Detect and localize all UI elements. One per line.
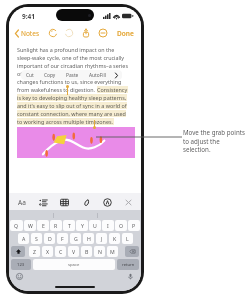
button[interactable]: Paste xyxy=(61,70,84,80)
staticText: D xyxy=(48,235,52,242)
staticText: from wakefulness to digestion. xyxy=(17,86,97,93)
staticText: sleep-wake cycle, one of the most crucia… xyxy=(17,54,125,61)
staticText: Paste xyxy=(66,72,79,78)
staticText: Copy xyxy=(44,72,56,78)
staticText: 123 xyxy=(17,262,25,268)
staticText: Q xyxy=(14,222,19,229)
staticText: G xyxy=(74,235,78,242)
button[interactable]: Cut xyxy=(21,70,39,80)
button[interactable]: O xyxy=(115,220,127,231)
staticText: Notes xyxy=(21,29,39,38)
button[interactable]: Done xyxy=(113,27,138,40)
staticText: I xyxy=(107,222,109,229)
button[interactable]: F xyxy=(57,233,68,244)
button[interactable]: Table xyxy=(56,195,72,209)
staticText: N xyxy=(98,248,102,255)
button[interactable]: R xyxy=(50,220,62,231)
button[interactable]: Attach xyxy=(78,195,94,209)
staticText: 9:41 xyxy=(22,12,35,21)
button[interactable]: Markup xyxy=(99,195,115,209)
button[interactable]: Z xyxy=(29,246,40,257)
staticText: is key to developing healthy sleep patte… xyxy=(17,94,127,101)
button[interactable]: 123 xyxy=(11,259,31,270)
staticText: space xyxy=(68,262,80,268)
button[interactable]: More actions xyxy=(111,71,122,80)
staticText: Done xyxy=(117,29,134,38)
button[interactable]: Dictate xyxy=(126,272,135,281)
staticText: and it's easy to slip out of sync in a w… xyxy=(17,102,127,109)
button[interactable]: E xyxy=(37,220,49,231)
button[interactable]: return xyxy=(117,259,139,270)
staticText: K xyxy=(113,235,117,242)
staticText: Move the grab points xyxy=(183,128,245,136)
button[interactable]: Share xyxy=(80,27,92,39)
button[interactable]: Shift xyxy=(11,246,25,257)
staticText: important of our circadian rhythms–a ser… xyxy=(17,62,128,69)
button[interactable]: space xyxy=(33,259,115,270)
button[interactable]: M xyxy=(107,246,118,257)
button[interactable]: B xyxy=(81,246,92,257)
button[interactable]: J xyxy=(96,233,107,244)
staticText: B xyxy=(85,248,89,255)
staticText: A xyxy=(22,235,26,242)
button[interactable]: Checklist xyxy=(35,195,51,209)
staticText: to adjust the selection. xyxy=(183,137,245,153)
button[interactable]: Close keyboard xyxy=(120,195,136,209)
staticText: return xyxy=(122,262,135,268)
staticText: X xyxy=(46,248,50,255)
button[interactable]: G xyxy=(70,233,81,244)
staticText: Consistency xyxy=(97,86,128,93)
button[interactable]: V xyxy=(68,246,79,257)
staticText: Cut xyxy=(26,72,34,78)
button[interactable]: L xyxy=(122,233,133,244)
button[interactable]: Notes xyxy=(9,27,43,40)
button[interactable]: P xyxy=(128,220,140,231)
button[interactable]: A xyxy=(18,233,29,244)
button[interactable]: K xyxy=(109,233,120,244)
staticText: constant connection, where many are used xyxy=(17,110,126,117)
button[interactable]: Undo xyxy=(47,27,59,39)
staticText: to working across multiple timezones. xyxy=(17,118,114,125)
button[interactable]: X xyxy=(42,246,53,257)
staticText: L xyxy=(126,235,129,242)
button[interactable]: Emoji xyxy=(15,272,24,281)
staticText: T xyxy=(68,222,71,229)
button[interactable]: C xyxy=(55,246,66,257)
staticText: O xyxy=(119,222,124,229)
staticText: Aa xyxy=(18,198,26,207)
button[interactable]: Q xyxy=(10,220,23,231)
staticText: of biological, physical, and behavioral xyxy=(17,70,112,77)
staticText: Z xyxy=(33,248,36,255)
button[interactable]: T xyxy=(63,220,75,231)
staticText: J xyxy=(101,235,103,242)
staticText: W xyxy=(28,222,33,229)
staticText: M xyxy=(110,248,115,255)
staticText: H xyxy=(87,235,91,242)
staticText: F xyxy=(61,235,64,242)
button[interactable]: Text format xyxy=(14,195,30,209)
button[interactable]: U xyxy=(89,220,101,231)
button[interactable]: H xyxy=(83,233,94,244)
button[interactable]: D xyxy=(44,233,55,244)
button[interactable]: N xyxy=(94,246,105,257)
button[interactable]: AutoFill xyxy=(84,70,111,80)
button[interactable]: More xyxy=(97,27,109,39)
staticText: Y xyxy=(81,222,84,229)
staticText: S xyxy=(35,235,38,242)
button[interactable]: W xyxy=(24,220,36,231)
button[interactable]: Delete xyxy=(125,246,139,257)
button[interactable]: S xyxy=(31,233,42,244)
button[interactable]: I xyxy=(102,220,114,231)
staticText: U xyxy=(93,222,97,229)
staticText: R xyxy=(54,222,58,229)
staticText: C xyxy=(59,248,63,255)
staticText: Sunlight has a profound impact on the xyxy=(17,46,115,53)
staticText: V xyxy=(72,248,76,255)
button[interactable]: Y xyxy=(76,220,88,231)
staticText: changes functions to us, since everythin… xyxy=(17,78,122,85)
staticText: E xyxy=(42,222,45,229)
button[interactable]: Redo xyxy=(63,27,75,39)
staticText: AutoFill xyxy=(89,72,106,78)
staticText: P xyxy=(132,222,136,229)
button[interactable]: Copy xyxy=(39,70,61,80)
